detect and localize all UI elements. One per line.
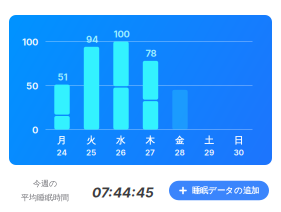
staticText: 火	[86, 135, 95, 146]
button[interactable]: 睡眠データの追加	[169, 181, 269, 200]
staticText: 94	[86, 34, 98, 45]
staticText: 26	[115, 148, 125, 157]
staticText: 25	[86, 148, 96, 157]
staticText: 100	[22, 36, 38, 48]
staticText: 水	[116, 135, 125, 146]
staticText: 78	[145, 48, 156, 59]
staticText: 0	[32, 124, 38, 136]
staticText: 今週の	[33, 178, 57, 188]
staticText: 土	[204, 135, 213, 146]
staticText: 木	[145, 135, 154, 146]
staticText: 月	[57, 135, 66, 146]
staticText: 金	[175, 135, 184, 146]
staticText: 51	[57, 71, 67, 83]
staticText: 29	[204, 148, 214, 157]
staticText: 睡眠データの追加	[192, 185, 259, 196]
staticText: 平均睡眠時間	[21, 192, 69, 203]
staticText: 30	[233, 148, 243, 157]
staticText: 28	[174, 148, 184, 157]
staticText: 07:44:45	[92, 184, 154, 201]
staticText: 27	[145, 148, 155, 157]
staticText: 日	[234, 135, 243, 146]
staticText: 50	[26, 80, 38, 92]
staticText: 100	[113, 28, 129, 40]
staticText: 24	[56, 148, 66, 157]
